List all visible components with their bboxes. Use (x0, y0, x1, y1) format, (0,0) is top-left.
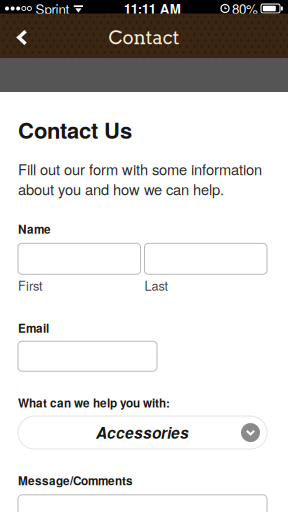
staticText: about you and how we can help. (18, 178, 224, 199)
staticText: First (18, 276, 43, 294)
staticText: Fill out our form with some information (18, 158, 262, 179)
staticText: Email (18, 319, 49, 336)
staticText: Accessories (96, 422, 189, 443)
button[interactable] (144, 243, 267, 274)
staticText: 11:11 AM (124, 0, 181, 18)
staticText: Name (18, 220, 51, 237)
staticText: Contact Us (18, 114, 132, 145)
button[interactable] (18, 495, 267, 512)
button[interactable] (18, 341, 157, 371)
button[interactable]: Back (0, 17, 41, 57)
staticText: Contact (108, 26, 179, 49)
staticText: What can we help you with: (18, 394, 170, 411)
staticText: Message/Comments (18, 472, 133, 489)
button[interactable] (18, 243, 140, 274)
button[interactable]: Accessories (18, 416, 267, 449)
staticText: Last (144, 276, 168, 294)
staticText: 80% (232, 0, 258, 18)
staticText: Sprint (35, 0, 69, 18)
